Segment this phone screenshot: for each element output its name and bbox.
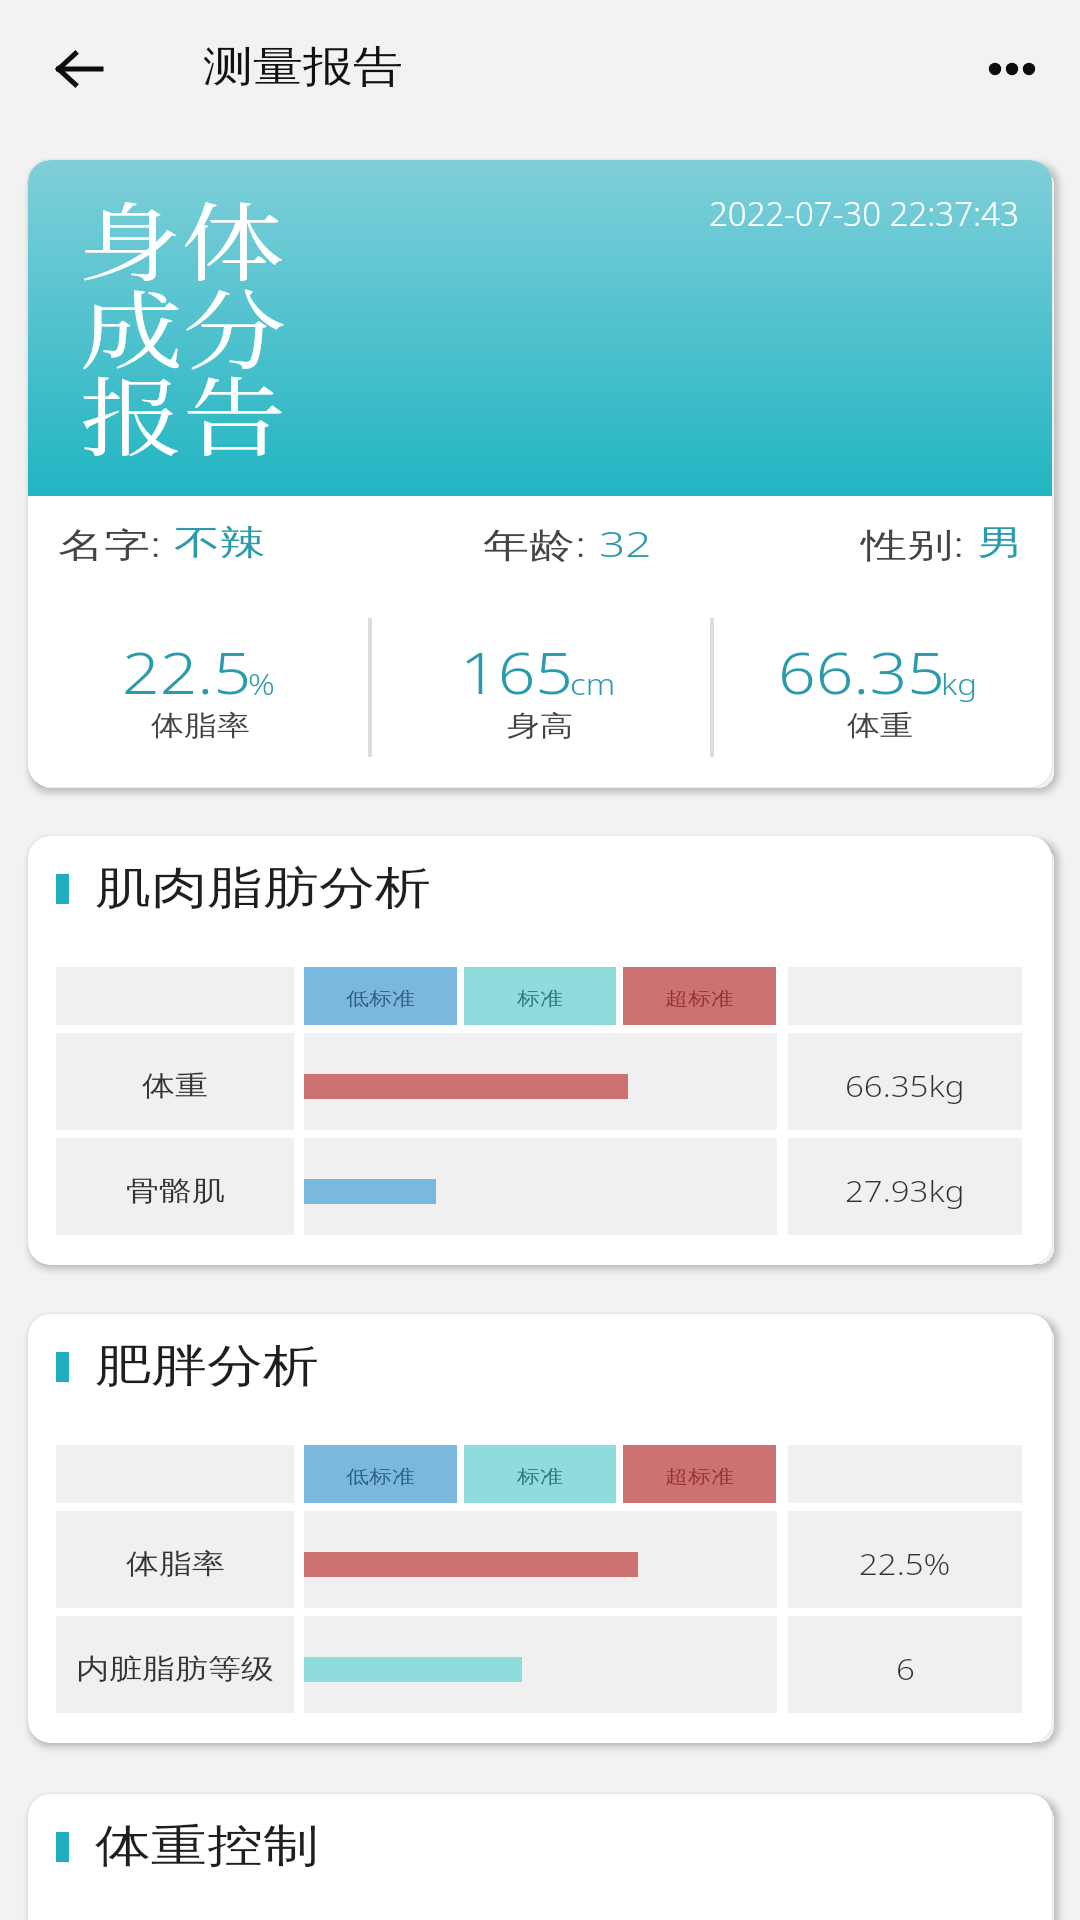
staticText: 27.93kg — [845, 1170, 965, 1211]
staticText: kg — [941, 665, 978, 703]
staticText: 22.5% — [859, 1543, 951, 1584]
button[interactable]: 肥胖分析 — [28, 1314, 1052, 1743]
staticText: 体脂率 — [151, 708, 250, 743]
staticText: 低标准 — [346, 1465, 415, 1488]
staticText: 66.35kg — [845, 1065, 965, 1106]
staticText: 名字: — [58, 521, 174, 568]
staticText: 标准 — [517, 1465, 563, 1488]
staticText: 66.35 — [778, 633, 945, 710]
button[interactable]: Back — [26, 26, 132, 112]
staticText: 标准 — [517, 987, 563, 1010]
staticText: 成分 — [80, 263, 286, 386]
button[interactable]: More options — [958, 30, 1066, 108]
staticText: 2022-07-30 22:37:43 — [709, 191, 1019, 236]
staticText: 6 — [896, 1648, 915, 1689]
staticText: 肥胖分析 — [95, 1338, 319, 1395]
staticText: 165 — [460, 633, 574, 710]
staticText: 体重控制 — [95, 1818, 319, 1875]
staticText: 男 — [977, 521, 1023, 564]
staticText: 性别: — [861, 521, 977, 568]
staticText: 测量报告 — [203, 40, 403, 93]
staticText: cm — [570, 665, 616, 703]
staticText: 体重 — [142, 1069, 208, 1103]
staticText: 体重 — [847, 708, 913, 743]
staticText: 低标准 — [346, 987, 415, 1010]
staticText: 32 — [599, 521, 652, 568]
staticText: 肌肉脂肪分析 — [95, 860, 431, 917]
staticText: 内脏脂肪等级 — [76, 1652, 274, 1686]
staticText: 身高 — [507, 708, 573, 743]
staticText: 体脂率 — [126, 1547, 225, 1581]
staticText: 身体 — [78, 175, 284, 298]
staticText: 年龄: — [483, 521, 599, 568]
staticText: % — [248, 665, 275, 703]
button[interactable]: 2022-07-30 22:37:43 — [28, 160, 1052, 787]
button[interactable]: 肌肉脂肪分析 — [28, 836, 1052, 1265]
staticText: 22.5 — [122, 633, 252, 710]
staticText: 不辣 — [174, 521, 266, 564]
staticText: 超标准 — [665, 987, 734, 1010]
staticText: 超标准 — [665, 1465, 734, 1488]
staticText: 报告 — [80, 350, 286, 473]
button[interactable]: 体重控制 — [28, 1794, 1052, 1920]
staticText: 骨骼肌 — [126, 1174, 225, 1208]
